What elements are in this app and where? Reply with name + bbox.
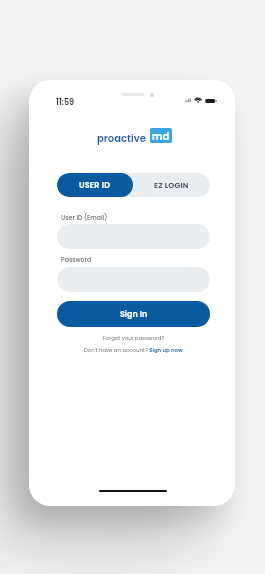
button[interactable]: Sign In	[57, 301, 210, 327]
staticText: User ID (Email)	[61, 213, 108, 222]
staticText: Sign In	[120, 309, 148, 320]
staticText: EZ LOGIN	[154, 180, 189, 191]
button[interactable]: EZ LOGIN	[133, 173, 210, 197]
button[interactable]: Forgot your password?	[57, 334, 210, 342]
staticText: proactive	[97, 131, 146, 145]
staticText: Password	[61, 255, 92, 264]
staticText: 11:59	[56, 97, 75, 108]
button[interactable]	[57, 267, 210, 292]
button[interactable]: USER ID	[57, 173, 133, 197]
staticText: USER ID	[79, 180, 111, 191]
staticText: md	[152, 129, 170, 143]
button[interactable]: Don't have an account? Sign up now	[57, 346, 210, 354]
staticText: Forgot your password?	[103, 334, 165, 342]
button[interactable]	[57, 224, 210, 249]
staticText: Don't have an account? Sign up now	[84, 346, 183, 354]
